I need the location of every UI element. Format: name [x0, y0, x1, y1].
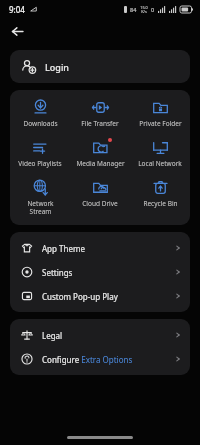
staticText: App Theme — [42, 243, 175, 254]
button[interactable]: Network Stream — [10, 178, 70, 217]
staticText: Video Playlists — [18, 159, 62, 168]
staticText: Login — [45, 61, 69, 73]
staticText: Private Folder — [139, 119, 182, 128]
staticText: Cloud Drive — [82, 199, 118, 208]
button[interactable]: Media Manager — [70, 138, 130, 169]
button[interactable]: Login — [10, 50, 190, 83]
staticText: Recycle Bin — [143, 199, 178, 208]
button[interactable]: Configure Extra Options — [10, 347, 190, 371]
staticText: File Transfer — [81, 119, 119, 128]
staticText: Network Stream — [27, 199, 54, 216]
staticText: 0 — [151, 6, 155, 13]
button[interactable]: Settings — [10, 260, 190, 284]
staticText: 84 — [130, 6, 137, 13]
button[interactable]: App Theme — [10, 236, 190, 260]
button[interactable]: Local Network — [130, 138, 190, 169]
staticText: Local Network — [138, 159, 182, 168]
staticText: Media Manager — [76, 159, 125, 168]
staticText: Downloads — [23, 119, 58, 128]
button[interactable]: Private Folder — [130, 98, 190, 129]
button[interactable]: Cloud Drive — [70, 178, 130, 209]
staticText: Configure Extra Options — [42, 354, 175, 365]
staticText: Legal — [42, 330, 175, 341]
button[interactable]: Legal — [10, 323, 190, 347]
staticText: 15.0 K/s — [140, 5, 148, 14]
button[interactable]: Video Playlists — [10, 138, 70, 169]
staticText: Custom Pop-up Play — [42, 291, 175, 302]
staticText: Settings — [42, 267, 175, 278]
button[interactable]: Recycle Bin — [130, 178, 190, 209]
staticText: 9:04 — [9, 4, 25, 15]
button[interactable]: Back — [5, 19, 29, 43]
button[interactable]: Custom Pop-up Play — [10, 284, 190, 308]
button[interactable]: Downloads — [10, 98, 70, 129]
button[interactable]: File Transfer — [70, 98, 130, 129]
